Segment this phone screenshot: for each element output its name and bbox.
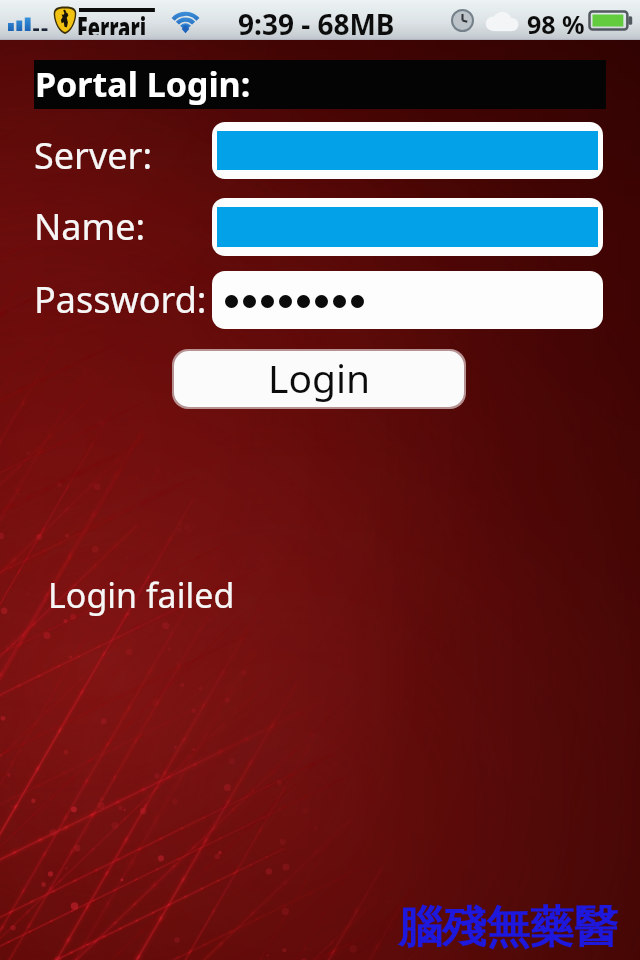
staticText: Name: <box>34 202 146 251</box>
other: Battery 98 percent <box>589 11 632 30</box>
staticText: Server: <box>34 131 153 180</box>
other: Alarm <box>451 9 474 32</box>
button[interactable]: Password field <box>212 271 603 329</box>
staticText: 腦殘無藥醫 <box>398 900 618 955</box>
staticText: Portal Login: <box>35 61 251 107</box>
button[interactable]: Server field <box>212 122 603 179</box>
staticText: Login <box>268 351 371 404</box>
other: Signal strength <box>8 16 48 31</box>
button[interactable]: Name field <box>212 198 603 256</box>
staticText: Password: <box>34 275 207 324</box>
other: Ferrari carrier logo <box>53 6 77 34</box>
staticText: Ferrari <box>77 7 146 35</box>
button[interactable]: Portal Login: <box>34 60 606 109</box>
button[interactable]: Login <box>174 351 464 407</box>
other: Wi-Fi <box>169 5 202 31</box>
other: Weather <box>483 10 523 32</box>
staticText: 98 % <box>527 7 585 41</box>
staticText: Login failed <box>48 572 235 618</box>
staticText: 9:39 - 68MB <box>238 5 395 43</box>
